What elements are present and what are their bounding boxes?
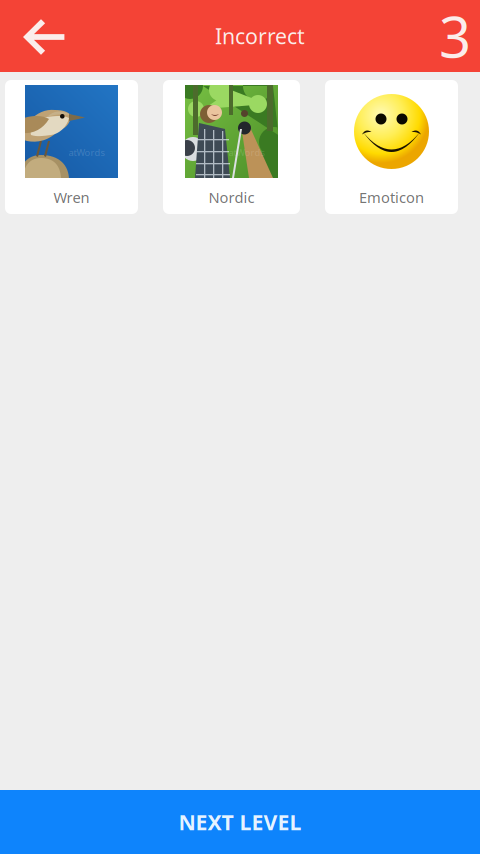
button[interactable]: NEXT LEVEL [0,790,480,854]
staticText: Wren [53,187,89,207]
staticText: Incorrect [215,22,305,50]
button[interactable]: Emoticon [325,80,458,214]
staticText: 3 [439,0,471,73]
staticText: atWords [68,146,104,159]
staticText: Emoticon [359,187,424,207]
staticText: atWords [228,146,264,159]
button[interactable]: Back [0,0,72,72]
staticText: NEXT LEVEL [178,808,301,836]
staticText: Nordic [208,187,254,207]
button[interactable]: atWords [5,80,138,214]
button[interactable]: atWords [163,80,300,214]
